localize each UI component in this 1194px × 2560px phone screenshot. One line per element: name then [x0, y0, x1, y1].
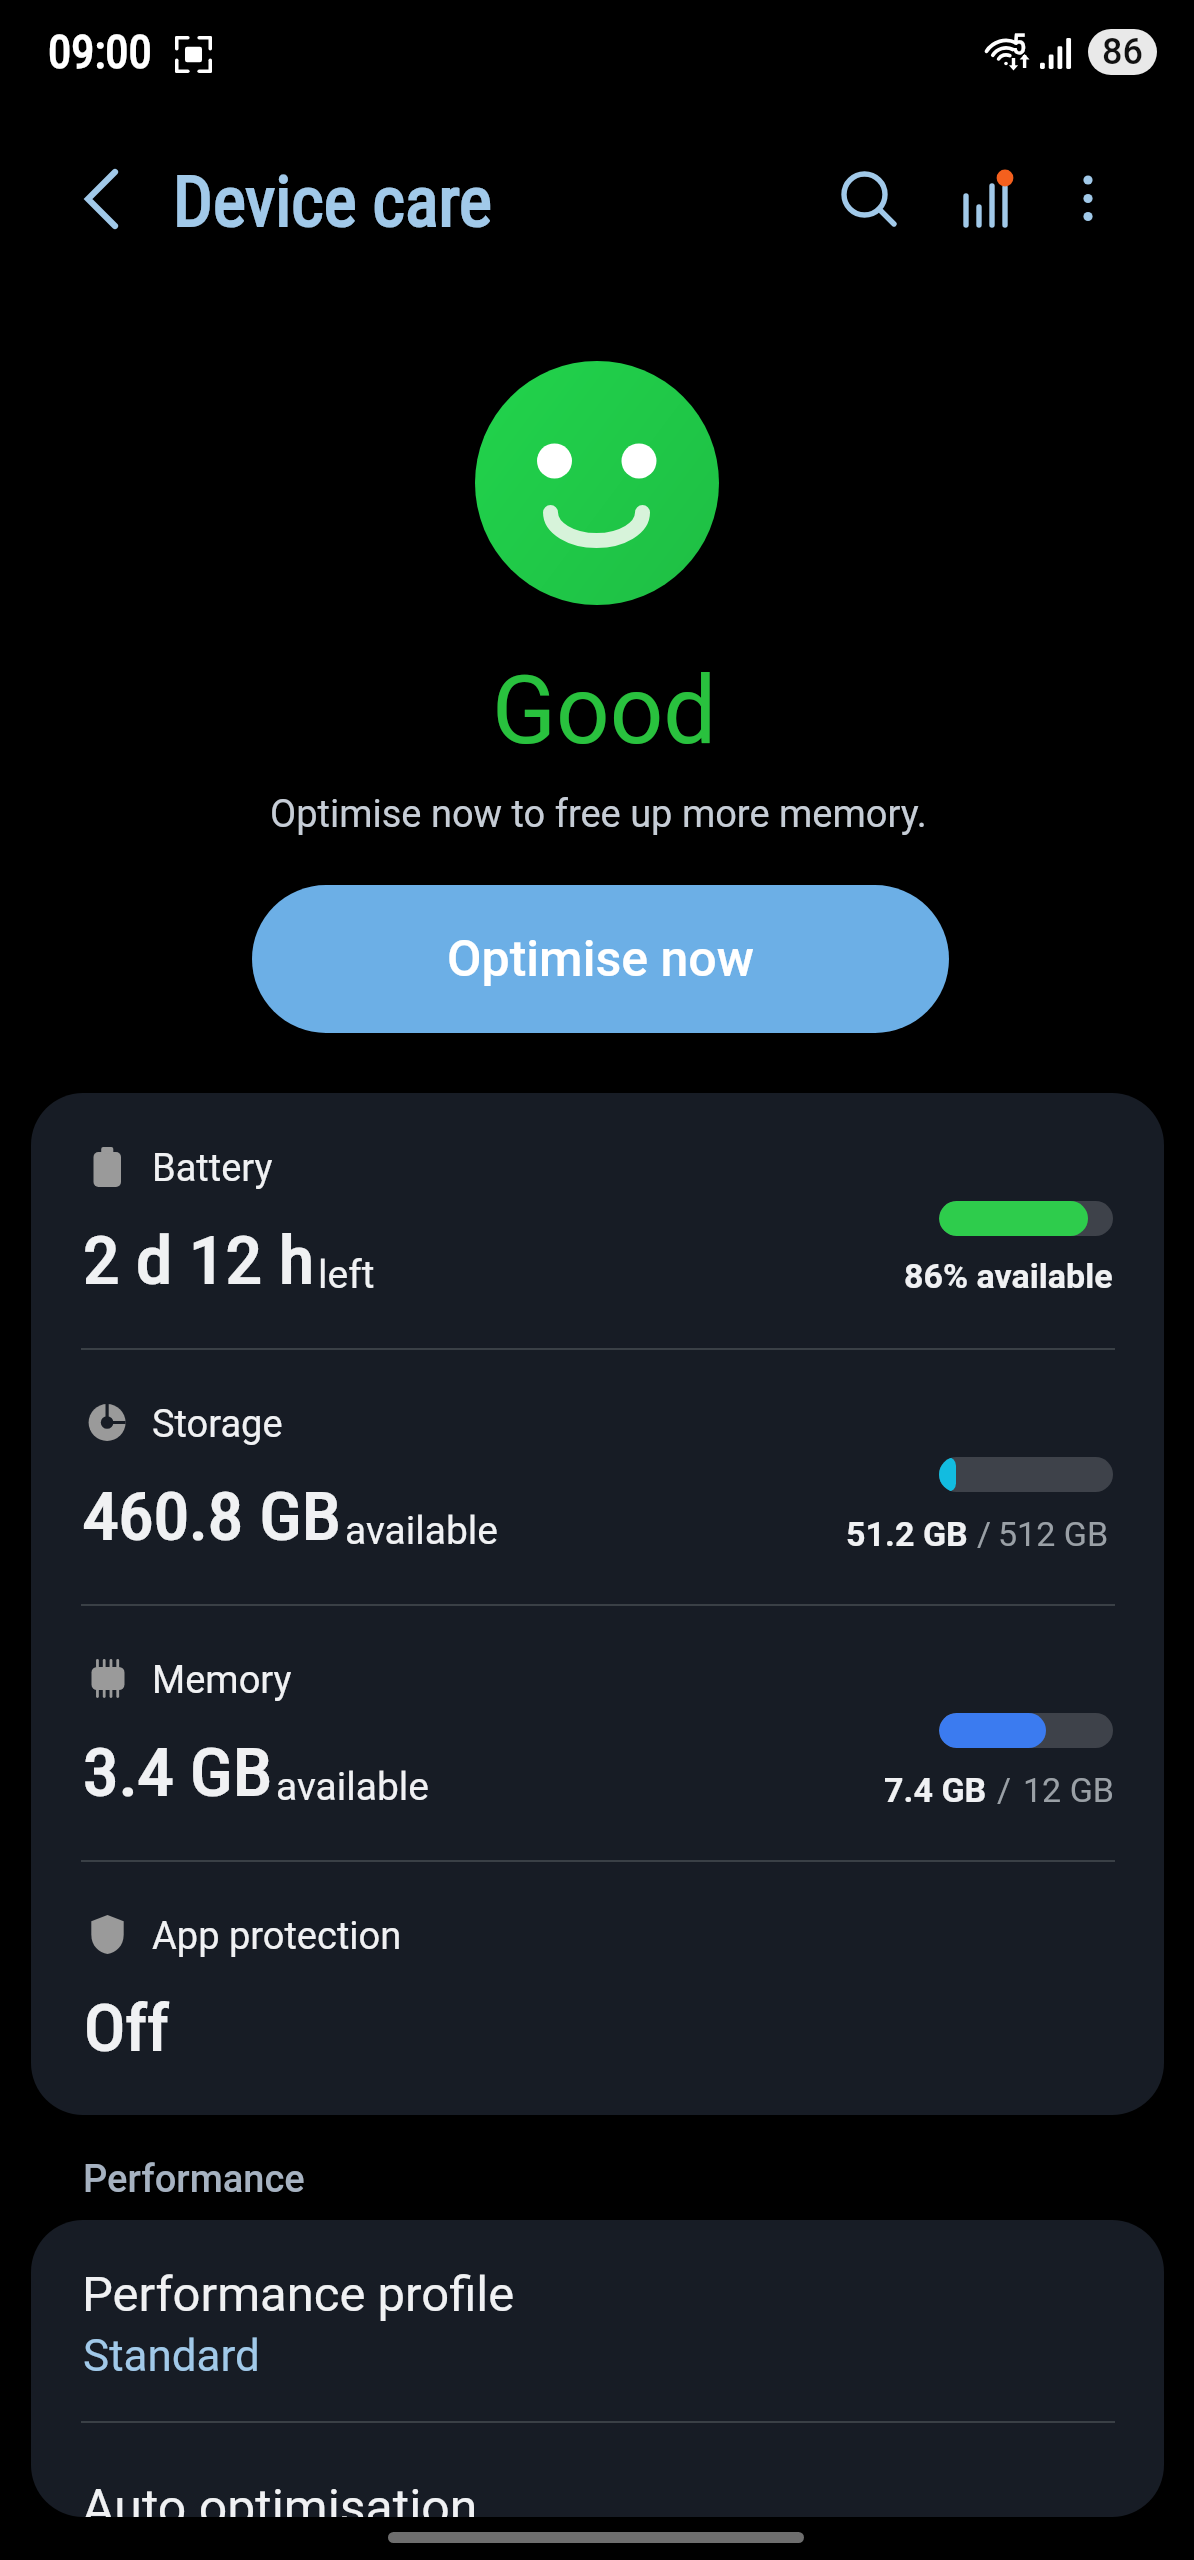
staticText: App protection	[152, 1914, 402, 1959]
staticText: 12 GB	[1023, 1770, 1114, 1810]
staticText: Battery	[152, 1146, 273, 1191]
button[interactable]: Usage statistics	[941, 150, 1029, 238]
staticText: Performance profile	[82, 2266, 515, 2323]
staticText: 7.4 GB	[884, 1770, 987, 1810]
button[interactable]: Navigate up	[57, 159, 145, 247]
staticText: Good	[492, 656, 717, 766]
staticText: Performance	[83, 2157, 305, 2202]
staticText: 3.4 GB	[83, 1736, 273, 1811]
button[interactable]: Performance profile	[31, 2220, 1164, 2421]
staticText: 09:00	[48, 24, 152, 79]
staticText: Auto optimisation	[82, 2479, 478, 2517]
button[interactable]: Auto optimisation	[31, 2423, 1164, 2517]
staticText: 86% available	[904, 1256, 1113, 1296]
staticText: available	[276, 1764, 429, 1810]
staticText: Standard	[83, 2330, 260, 2382]
staticText: Device care	[173, 161, 492, 243]
button[interactable]: More options	[1044, 154, 1132, 242]
button[interactable]: Search	[820, 150, 908, 238]
staticText: Optimise now	[447, 930, 754, 989]
staticText: 460.8 GB	[83, 1480, 341, 1555]
staticText: 2 d 12 h	[83, 1224, 315, 1299]
button[interactable]: Battery	[31, 1093, 1164, 1348]
staticText: 512 GB	[998, 1514, 1109, 1554]
button[interactable]: App protection	[31, 1861, 1164, 2115]
staticText: Memory	[152, 1658, 292, 1703]
staticText: 86	[1102, 31, 1143, 73]
staticText: Storage	[152, 1402, 283, 1447]
staticText: 51.2 GB	[846, 1514, 968, 1554]
staticText: available	[345, 1508, 498, 1554]
staticText: Off	[84, 1992, 169, 2066]
staticText: left	[318, 1252, 375, 1298]
button[interactable]: Storage	[31, 1349, 1164, 1604]
staticText: 5	[1012, 28, 1026, 61]
button[interactable]: Memory	[31, 1605, 1164, 1860]
staticText: /	[997, 1770, 1012, 1810]
staticText: /	[977, 1514, 992, 1554]
staticText: Optimise now to free up more memory.	[270, 792, 927, 837]
button[interactable]: Optimise now	[252, 885, 949, 1033]
